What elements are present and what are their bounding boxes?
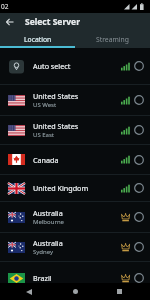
staticText: Brazil: [33, 273, 52, 283]
staticText: Melbourne: [33, 218, 64, 226]
staticText: Streaming: [96, 35, 129, 44]
button[interactable]: [111, 283, 127, 300]
button[interactable]: Australia: [0, 233, 150, 261]
button[interactable]: Location: [0, 31, 75, 48]
button[interactable]: [67, 283, 83, 300]
staticText: Auto select: [33, 61, 71, 71]
staticText: Australia: [33, 238, 63, 248]
staticText: Sydney: [33, 248, 54, 256]
staticText: US East: [33, 131, 54, 139]
staticText: Canada: [33, 155, 59, 165]
staticText: Location: [24, 35, 52, 44]
staticText: Australia: [33, 208, 63, 218]
button[interactable]: United States: [0, 85, 150, 115]
button[interactable]: Auto select: [0, 48, 150, 84]
staticText: United Kingdom: [33, 183, 89, 193]
button[interactable]: Brazil: [0, 262, 150, 283]
button[interactable]: Australia: [0, 202, 150, 232]
button[interactable]: [21, 283, 37, 300]
staticText: United States: [33, 91, 79, 101]
button[interactable]: [0, 13, 20, 31]
staticText: US West: [33, 101, 57, 109]
staticText: Select Server: [25, 16, 80, 28]
button[interactable]: United States: [0, 116, 150, 144]
staticText: 02: [1, 2, 9, 11]
staticText: United States: [33, 121, 79, 131]
button[interactable]: Streaming: [75, 31, 150, 48]
button[interactable]: United Kingdom: [0, 175, 150, 201]
button[interactable]: Canada: [0, 145, 150, 174]
